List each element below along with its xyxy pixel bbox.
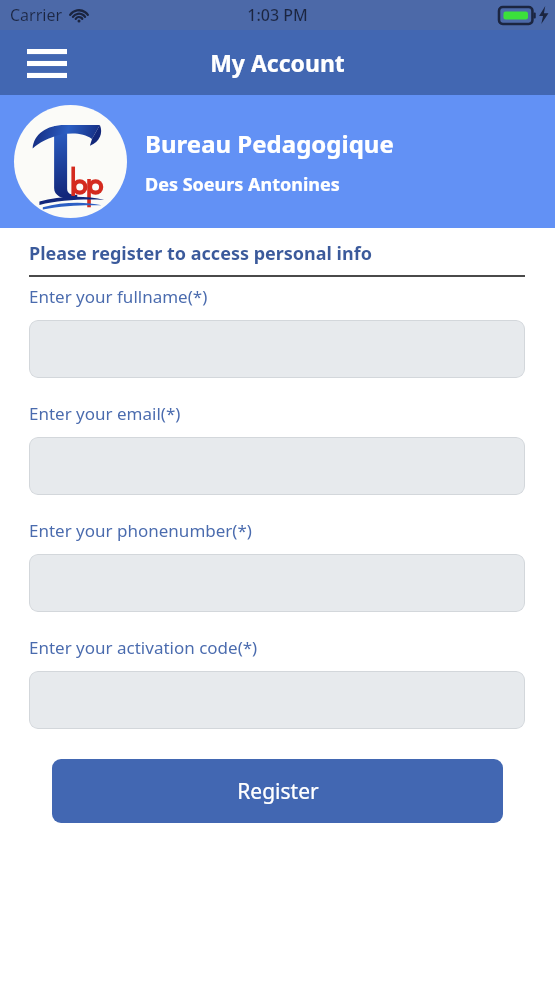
staticText: Enter your fullname(*): [29, 285, 208, 308]
button[interactable]: Enter your fullname(*): [29, 320, 525, 378]
staticText: Enter your email(*): [29, 402, 181, 425]
staticText: Please register to access personal info: [29, 241, 372, 266]
button[interactable]: Enter your email(*): [29, 437, 525, 495]
staticText: 1:03 PM: [247, 4, 308, 26]
staticText: My Account: [210, 47, 345, 78]
button[interactable]: Enter your activation code(*): [29, 671, 525, 729]
staticText: Enter your phonenumber(*): [29, 519, 252, 542]
staticText: Register: [237, 777, 319, 806]
staticText: Des Soeurs Antonines: [145, 172, 340, 197]
button[interactable]: Open navigation menu: [18, 38, 76, 88]
staticText: Bureau Pedagogique: [145, 127, 394, 160]
staticText: Carrier: [10, 4, 63, 26]
staticText: Enter your activation code(*): [29, 636, 258, 659]
button[interactable]: Register: [52, 759, 503, 823]
button[interactable]: Enter your phonenumber(*): [29, 554, 525, 612]
button[interactable]: Bureau Pedagogique: [0, 95, 555, 228]
